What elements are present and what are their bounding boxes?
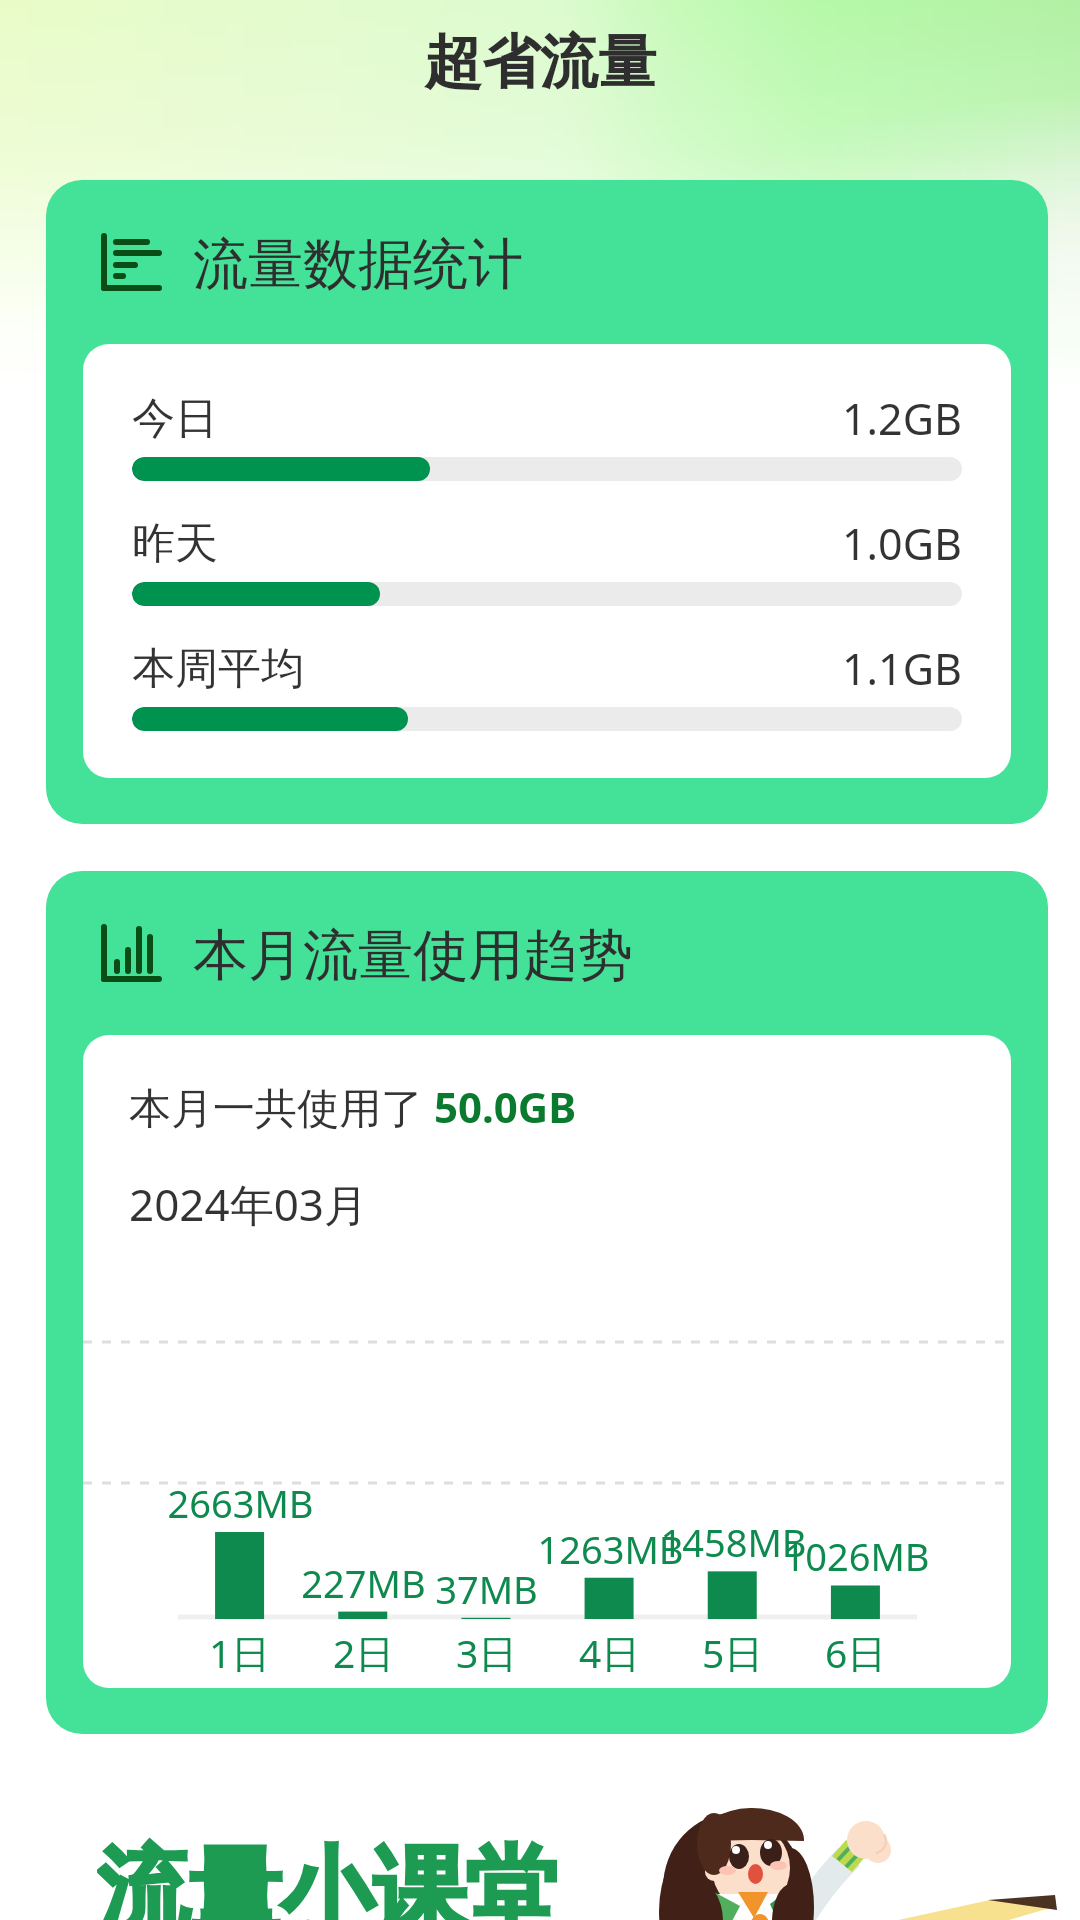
staticText: 流量数据统计 bbox=[193, 230, 523, 299]
staticText: 2663MB bbox=[167, 1477, 314, 1529]
staticText: 2日 bbox=[333, 1626, 395, 1679]
staticText: 1日 bbox=[209, 1626, 271, 1679]
staticText: 1.0GB bbox=[842, 514, 962, 573]
staticText: 3日 bbox=[456, 1626, 518, 1679]
staticText: 本月流量使用趋势 bbox=[193, 921, 633, 990]
button[interactable]: 本月流量使用趋势 bbox=[46, 871, 1048, 1734]
button[interactable]: 流量小课堂 bbox=[0, 1800, 1080, 1920]
staticText: 流量小课堂 bbox=[97, 1833, 557, 1920]
staticText: 1026MB bbox=[783, 1530, 930, 1582]
staticText: 本月一共使用了 50.0GB bbox=[129, 1078, 577, 1135]
button[interactable]: 流量数据统计 bbox=[46, 180, 1048, 824]
staticText: 227MB bbox=[301, 1557, 426, 1609]
staticText: 2024年03月 bbox=[129, 1174, 369, 1234]
staticText: 1263MB bbox=[537, 1523, 684, 1575]
staticText: 1.1GB bbox=[842, 639, 962, 698]
staticText: 37MB bbox=[435, 1563, 538, 1615]
staticText: 4日 bbox=[579, 1626, 641, 1679]
staticText: 今日 bbox=[132, 392, 218, 446]
staticText: 本周平均 bbox=[132, 642, 304, 696]
staticText: 1.2GB bbox=[842, 389, 962, 448]
staticText: 昨天 bbox=[132, 517, 218, 571]
staticText: 超省流量 bbox=[424, 26, 656, 99]
staticText: 6日 bbox=[825, 1626, 887, 1679]
staticText: 5日 bbox=[702, 1626, 764, 1679]
staticText: 1458MB bbox=[660, 1516, 807, 1568]
